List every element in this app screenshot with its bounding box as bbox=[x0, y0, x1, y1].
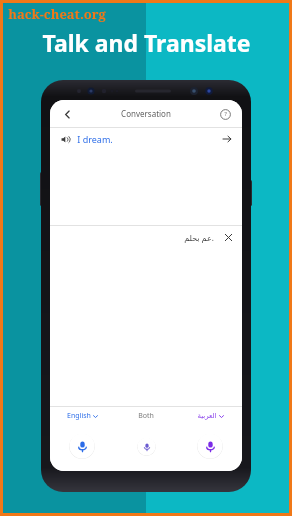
button[interactable]: Close bbox=[221, 230, 235, 244]
button[interactable]: عم بحلم. bbox=[50, 226, 242, 248]
staticText: عم بحلم. bbox=[184, 232, 214, 243]
button[interactable]: Both bbox=[114, 407, 178, 425]
button[interactable]: العربية bbox=[178, 407, 242, 425]
button[interactable]: Back bbox=[57, 104, 77, 124]
button[interactable]: English bbox=[50, 407, 114, 425]
staticText: العربية bbox=[197, 412, 217, 420]
button[interactable]: Speak both bbox=[137, 437, 156, 456]
button[interactable]: Help bbox=[215, 104, 235, 124]
button[interactable]: Play audio bbox=[50, 128, 242, 150]
staticText: Conversation bbox=[121, 108, 171, 119]
button[interactable]: Speak English bbox=[69, 433, 95, 459]
button[interactable]: Forward bbox=[219, 131, 235, 147]
staticText: hack-cheat.org bbox=[8, 5, 106, 23]
staticText: English bbox=[67, 411, 91, 421]
staticText: Talk and Translate bbox=[42, 27, 251, 58]
staticText: Both bbox=[138, 411, 154, 421]
button[interactable]: Play audio bbox=[57, 131, 73, 147]
staticText: ? bbox=[224, 110, 227, 118]
button[interactable]: Speak Arabic bbox=[197, 433, 223, 459]
staticText: I dream. bbox=[77, 133, 113, 145]
